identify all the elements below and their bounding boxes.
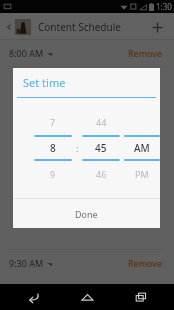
staticText: Done [75, 208, 98, 220]
staticText: 46 [96, 168, 107, 180]
button[interactable]: Back [14, 284, 54, 310]
button[interactable]: Remove [126, 255, 165, 271]
button[interactable]: Navigate up [4, 19, 33, 35]
staticText: 45 [95, 141, 107, 155]
staticText: Remove [128, 47, 163, 59]
button[interactable]: Remove [126, 45, 165, 61]
staticText: 1:30 [156, 1, 172, 12]
staticText: 8:00 AM [9, 47, 44, 59]
staticText: 7 [50, 116, 56, 128]
button[interactable]: Done [13, 199, 160, 228]
staticText: PM [135, 168, 149, 180]
button[interactable]: AM PM [124, 98, 160, 198]
staticText: 8 [50, 141, 56, 155]
button[interactable]: Hour [34, 98, 72, 198]
button[interactable]: Recent apps [121, 284, 161, 310]
staticText: Content Schedule [38, 20, 121, 34]
staticText: : [76, 142, 79, 154]
button[interactable]: 8:00 AM [0, 40, 174, 66]
button[interactable]: 9:30 AM [0, 250, 174, 276]
staticText: 9:30 AM [9, 257, 44, 269]
staticText: 44 [96, 116, 107, 128]
staticText: 9 [50, 168, 56, 180]
staticText: Remove [128, 257, 163, 269]
button[interactable]: Minute [82, 98, 120, 198]
button[interactable]: Add schedule [144, 14, 170, 40]
button[interactable]: Home [67, 284, 107, 310]
staticText: Set time [23, 75, 66, 90]
staticText: AM [134, 141, 150, 155]
